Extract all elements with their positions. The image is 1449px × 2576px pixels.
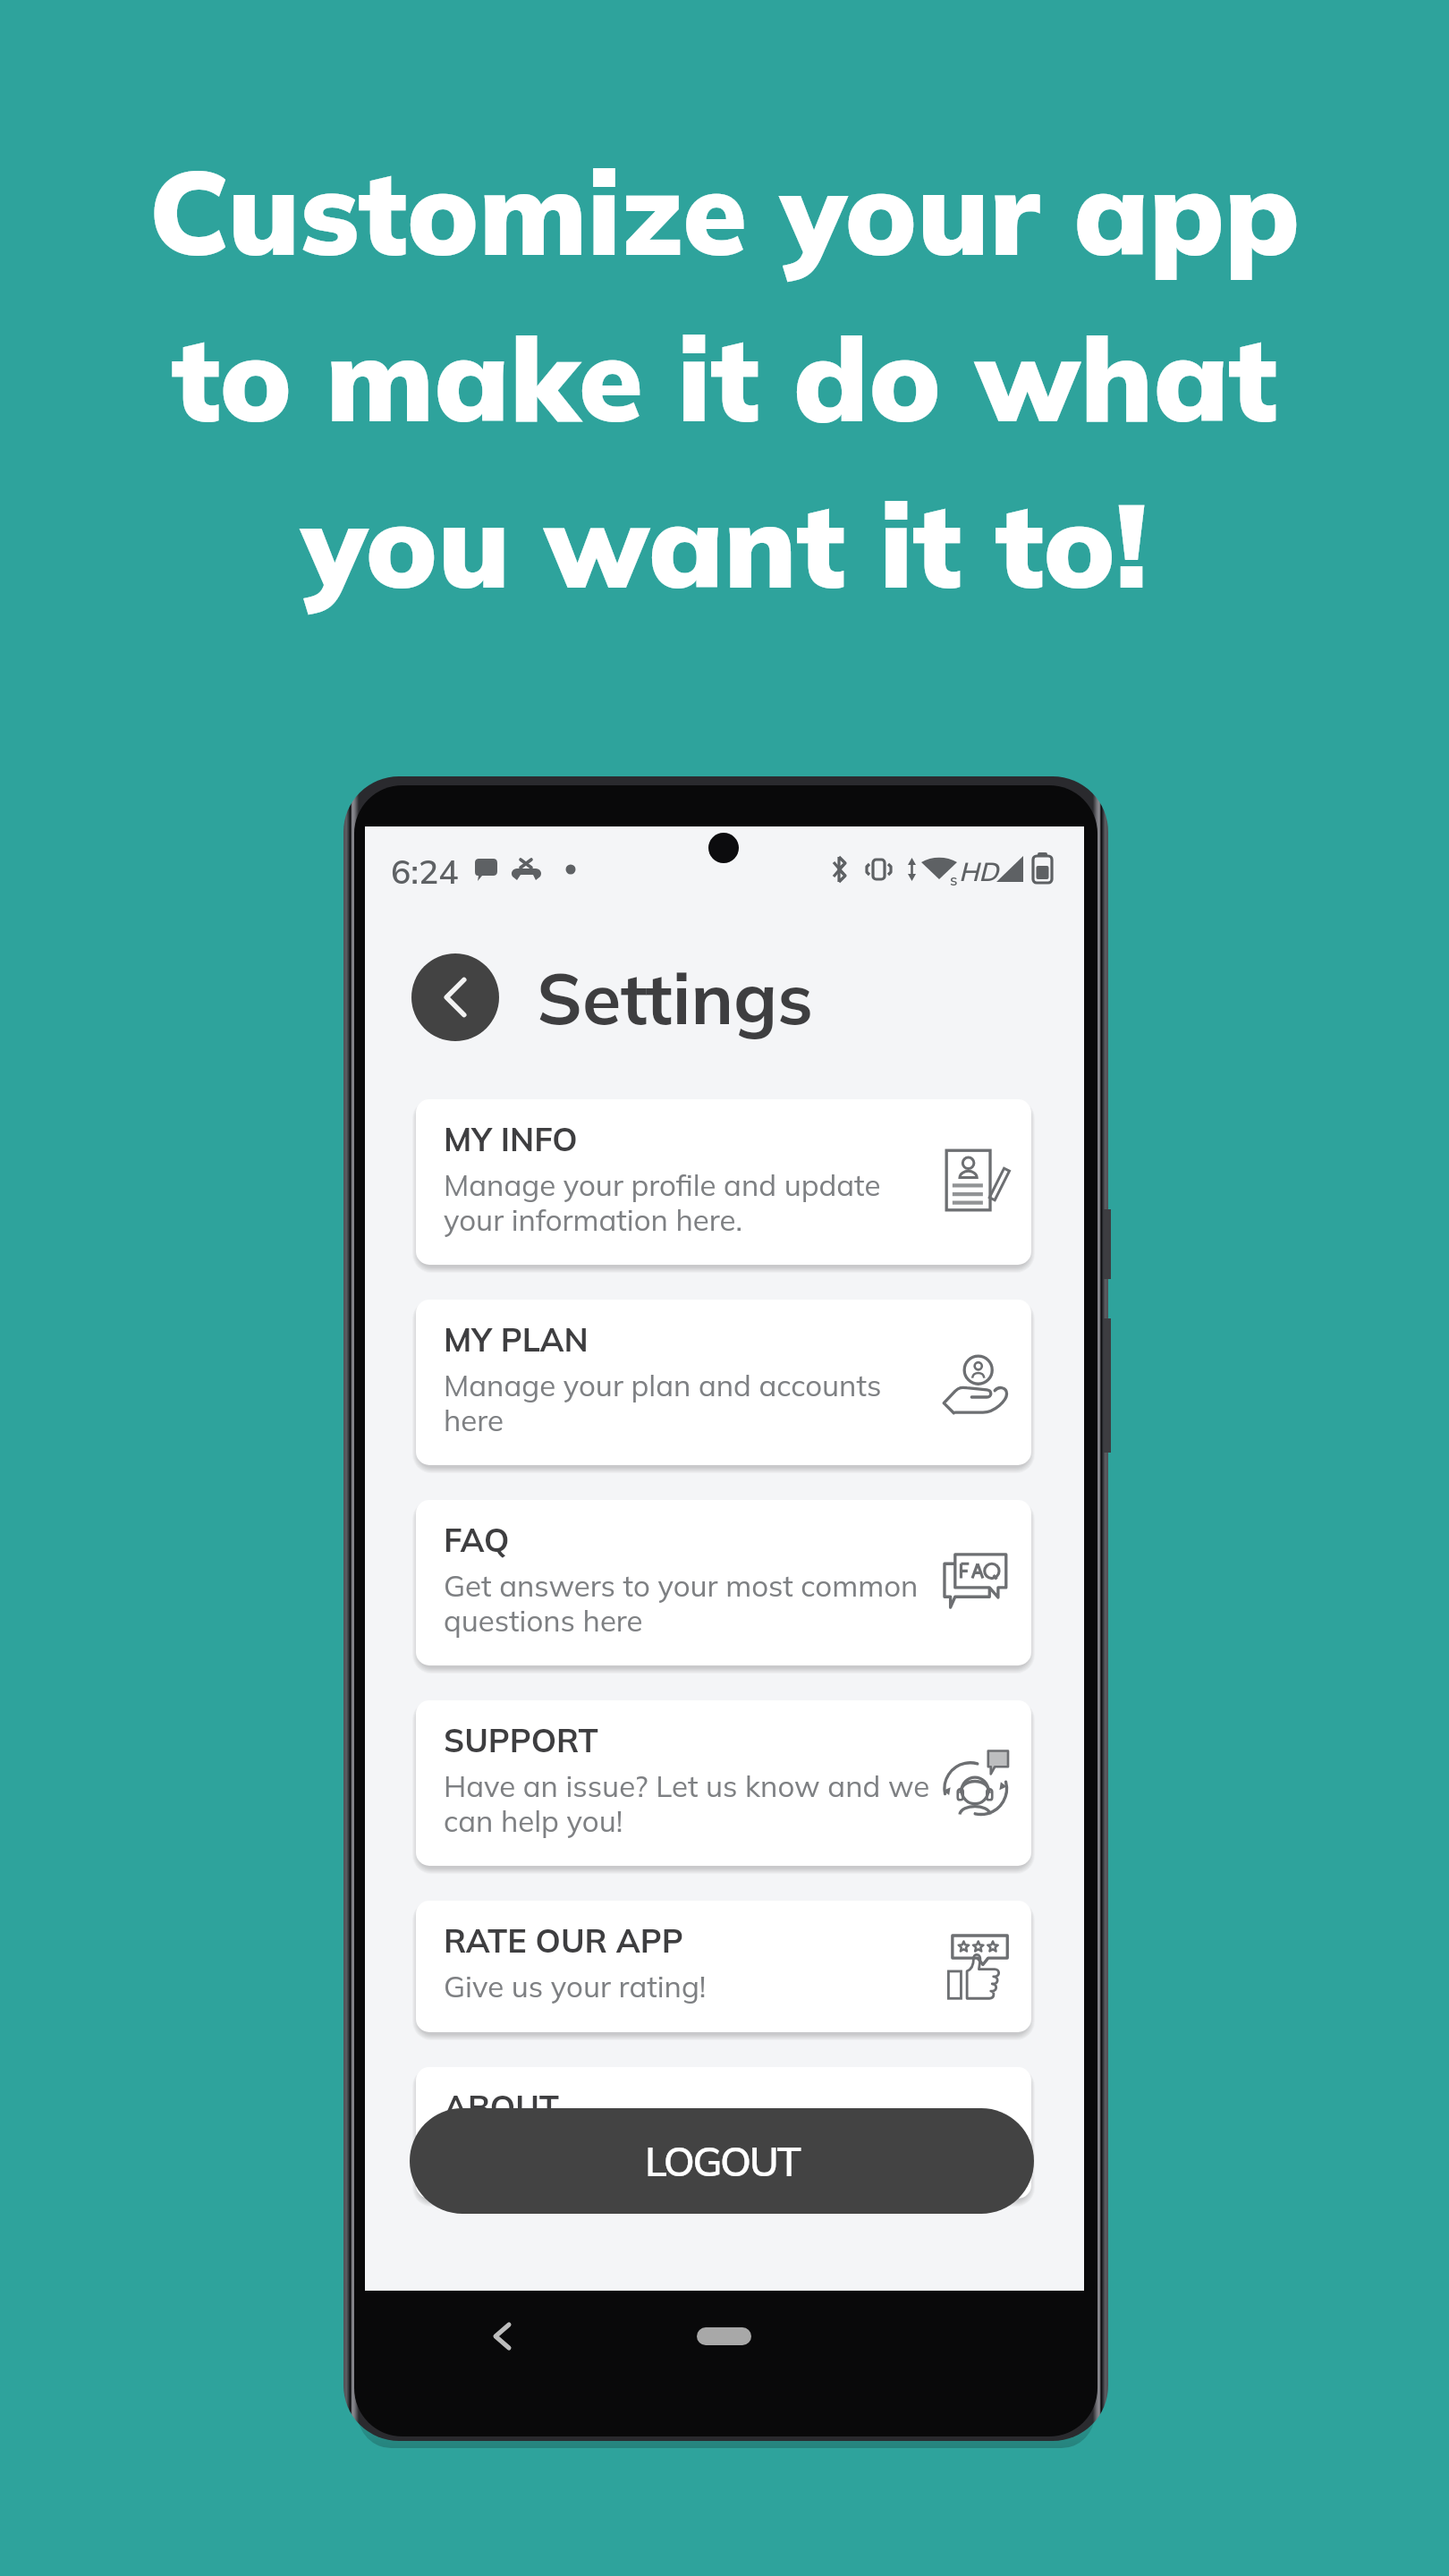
staticText: Get answers to your most common question… — [444, 1567, 919, 1639]
button[interactable]: MY PLAN — [416, 1300, 1031, 1465]
button[interactable]: SUPPORT — [416, 1700, 1031, 1866]
button[interactable]: LOGOUT — [410, 2108, 1034, 2214]
staticText: Learn more about us here — [444, 2134, 793, 2171]
staticText: Manage your profile and update your info… — [444, 1166, 881, 1238]
staticText: LOGOUT — [645, 2136, 800, 2186]
staticText: s — [950, 870, 958, 889]
staticText: Give us your rating! — [444, 1968, 707, 2004]
staticText: Manage your plan and accounts here — [444, 1367, 882, 1438]
button[interactable]: Back — [411, 953, 499, 1041]
button[interactable]: FAQ — [416, 1500, 1031, 1665]
button[interactable]: MY INFO — [416, 1099, 1031, 1265]
staticText: FAQ — [444, 1520, 510, 1560]
staticText: 6:24 — [391, 851, 459, 892]
staticText: RATE OUR APP — [444, 1920, 683, 1961]
staticText: MY PLAN — [444, 1319, 589, 1360]
staticText: MY INFO — [444, 1119, 578, 1159]
button[interactable]: RATE OUR APP — [416, 1901, 1031, 2032]
staticText: Settings — [537, 953, 813, 1042]
staticText: HD — [959, 855, 999, 887]
staticText: SUPPORT — [444, 1720, 598, 1760]
staticText: ABOUT — [444, 2087, 560, 2127]
button[interactable]: ABOUT — [416, 2067, 1031, 2199]
staticText: Customize your app to make it do what yo… — [0, 137, 1449, 617]
staticText: Have an issue? Let us know and we can he… — [444, 1767, 930, 1839]
